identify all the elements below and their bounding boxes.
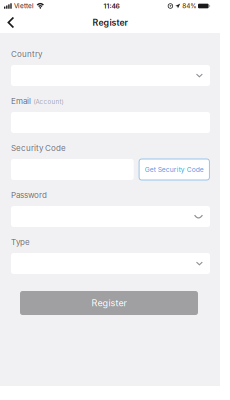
button[interactable]: Show password	[11, 206, 210, 227]
staticText: Email	[11, 96, 31, 106]
button[interactable]: Get Security Code	[139, 159, 209, 180]
staticText: (Account)	[33, 98, 63, 106]
button[interactable]: Register	[20, 291, 198, 315]
staticText: 84%	[182, 2, 196, 10]
button[interactable]	[11, 65, 210, 86]
staticText: Password	[11, 190, 47, 200]
staticText: Country	[11, 49, 42, 59]
staticText: Viettel	[14, 2, 34, 10]
staticText: Register	[91, 297, 126, 308]
staticText: Register	[92, 17, 127, 28]
staticText: 11:46	[103, 2, 119, 10]
button[interactable]: Back	[0, 12, 24, 33]
staticText: Type	[11, 237, 30, 247]
staticText: Get Security Code	[145, 165, 204, 174]
button[interactable]	[11, 253, 210, 274]
staticText: Security Code	[11, 143, 66, 153]
